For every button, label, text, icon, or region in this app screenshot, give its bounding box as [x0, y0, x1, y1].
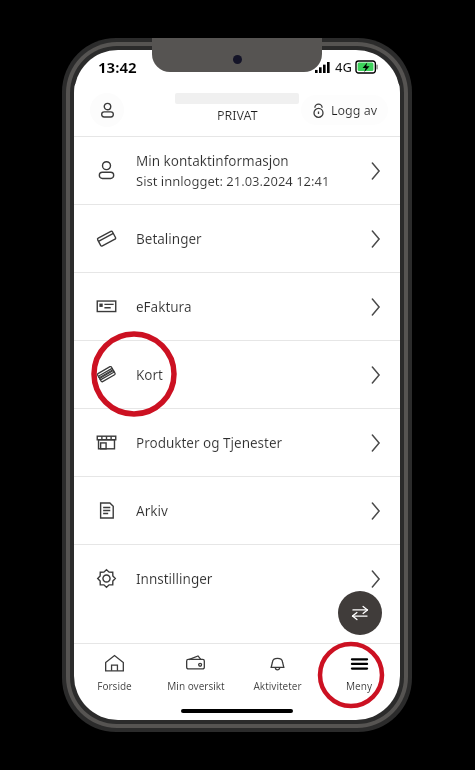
- button[interactable]: Arkiv: [74, 477, 400, 544]
- staticText: Aktiviteter: [253, 679, 302, 693]
- button[interactable]: Produkter og Tjenester: [74, 409, 400, 476]
- button[interactable]: Innstillinger: [74, 545, 400, 612]
- staticText: Betalinger: [136, 230, 202, 248]
- staticText: Sist innlogget: 21.03.2024 12:41: [136, 172, 330, 190]
- staticText: Kort: [136, 366, 163, 384]
- button[interactable]: Logg av: [301, 95, 388, 125]
- staticText: Meny: [346, 679, 372, 693]
- button[interactable]: Kort: [74, 341, 400, 408]
- button[interactable]: Forside: [74, 644, 155, 702]
- staticText: Forside: [97, 679, 132, 693]
- staticText: 13:42: [98, 57, 137, 77]
- staticText: 4G: [335, 58, 352, 76]
- staticText: Produkter og Tjenester: [136, 434, 283, 452]
- button[interactable]: Betalinger: [74, 205, 400, 272]
- staticText: eFaktura: [136, 298, 192, 316]
- staticText: PRIVAT: [217, 107, 258, 124]
- staticText: Min oversikt: [167, 679, 225, 693]
- button[interactable]: eFaktura: [74, 273, 400, 340]
- button[interactable]: Meny: [318, 644, 400, 702]
- staticText: Innstillinger: [136, 570, 213, 588]
- button[interactable]: Min kontaktinformasjon: [74, 137, 400, 204]
- staticText: Arkiv: [136, 502, 168, 520]
- button[interactable]: Aktiviteter: [236, 644, 318, 702]
- button[interactable]: Bytt konto: [338, 591, 382, 635]
- button[interactable]: Profil: [90, 93, 124, 127]
- button[interactable]: Min oversikt: [155, 644, 236, 702]
- staticText: Logg av: [331, 102, 378, 119]
- staticText: Min kontaktinformasjon: [136, 152, 289, 170]
